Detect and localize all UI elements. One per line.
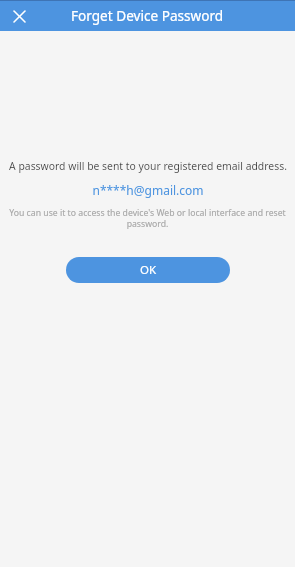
staticText: Forget Device Password <box>71 6 224 25</box>
staticText: A password will be sent to your register… <box>9 159 287 173</box>
button[interactable]: OK <box>66 257 230 283</box>
button[interactable] <box>7 4 31 28</box>
staticText: You can use it to access the device's We… <box>9 207 286 230</box>
staticText: OK <box>140 262 157 278</box>
staticText: n****h@gmail.com <box>92 182 204 198</box>
